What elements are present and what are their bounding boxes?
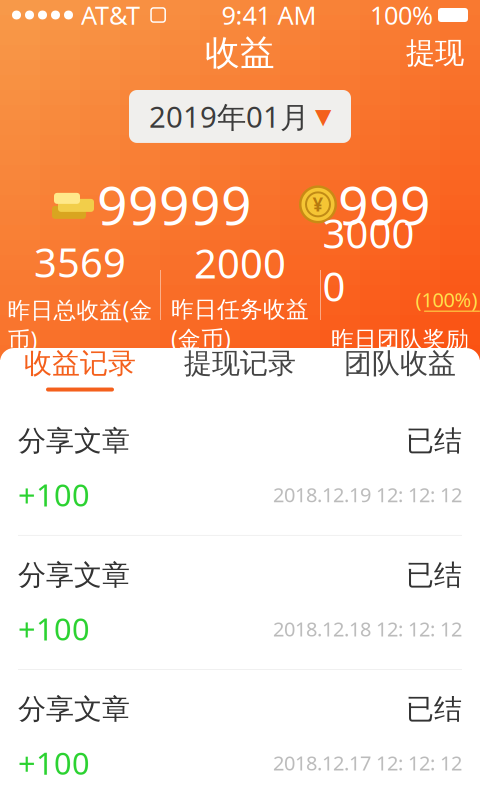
staticText: 分享文章 xyxy=(18,424,130,458)
staticText: 分享文章 xyxy=(18,692,130,726)
button[interactable]: 提现 xyxy=(390,27,480,79)
button[interactable]: 分享文章 xyxy=(0,402,480,536)
staticText: 已结 xyxy=(406,558,462,592)
staticText: ¥ xyxy=(312,192,323,217)
staticText: 昨日任务收益(金币) xyxy=(171,296,309,353)
staticText: (100%) xyxy=(415,286,477,313)
staticText: 2018.12.17 12: 12: 12 xyxy=(273,749,462,776)
staticText: AT&T xyxy=(81,0,140,32)
button[interactable]: 收益记录 xyxy=(0,338,160,400)
staticText: 2018.12.19 12: 12: 12 xyxy=(273,481,462,508)
staticText: 已结 xyxy=(406,692,462,726)
staticText: 2000 xyxy=(194,236,286,290)
staticText: 99999 xyxy=(97,169,252,240)
staticText: 昨日总收益(金币) xyxy=(7,294,152,355)
staticText: 9:41 AM xyxy=(222,0,317,32)
button[interactable]: 2019年01月 xyxy=(129,90,351,143)
staticText: 999 xyxy=(338,169,431,240)
staticText: 提现记录 xyxy=(184,346,296,380)
staticText: 团队收益 xyxy=(344,346,456,380)
staticText: +100 xyxy=(18,608,90,649)
staticText: 分享文章 xyxy=(18,558,130,592)
staticText: 2019年01月 xyxy=(149,97,309,136)
staticText: 昨日团队奖励(金币) xyxy=(331,326,469,383)
button[interactable]: 分享文章 xyxy=(0,536,480,670)
staticText: 30000 xyxy=(322,206,414,313)
staticText: 提现 xyxy=(406,35,464,71)
staticText: 收益记录 xyxy=(24,346,136,380)
staticText: +100 xyxy=(18,742,90,783)
button[interactable]: 团队收益 xyxy=(320,338,480,400)
button[interactable]: 提现记录 xyxy=(160,338,320,400)
staticText: 100% xyxy=(370,0,433,32)
staticText: 收益 xyxy=(205,32,275,74)
staticText: 已结 xyxy=(406,424,462,458)
button[interactable]: 分享文章 xyxy=(0,670,480,800)
staticText: ▼ xyxy=(315,104,331,129)
staticText: 3569 xyxy=(34,235,126,288)
staticText: +100 xyxy=(18,474,90,515)
staticText: 2018.12.18 12: 12: 12 xyxy=(273,615,462,642)
